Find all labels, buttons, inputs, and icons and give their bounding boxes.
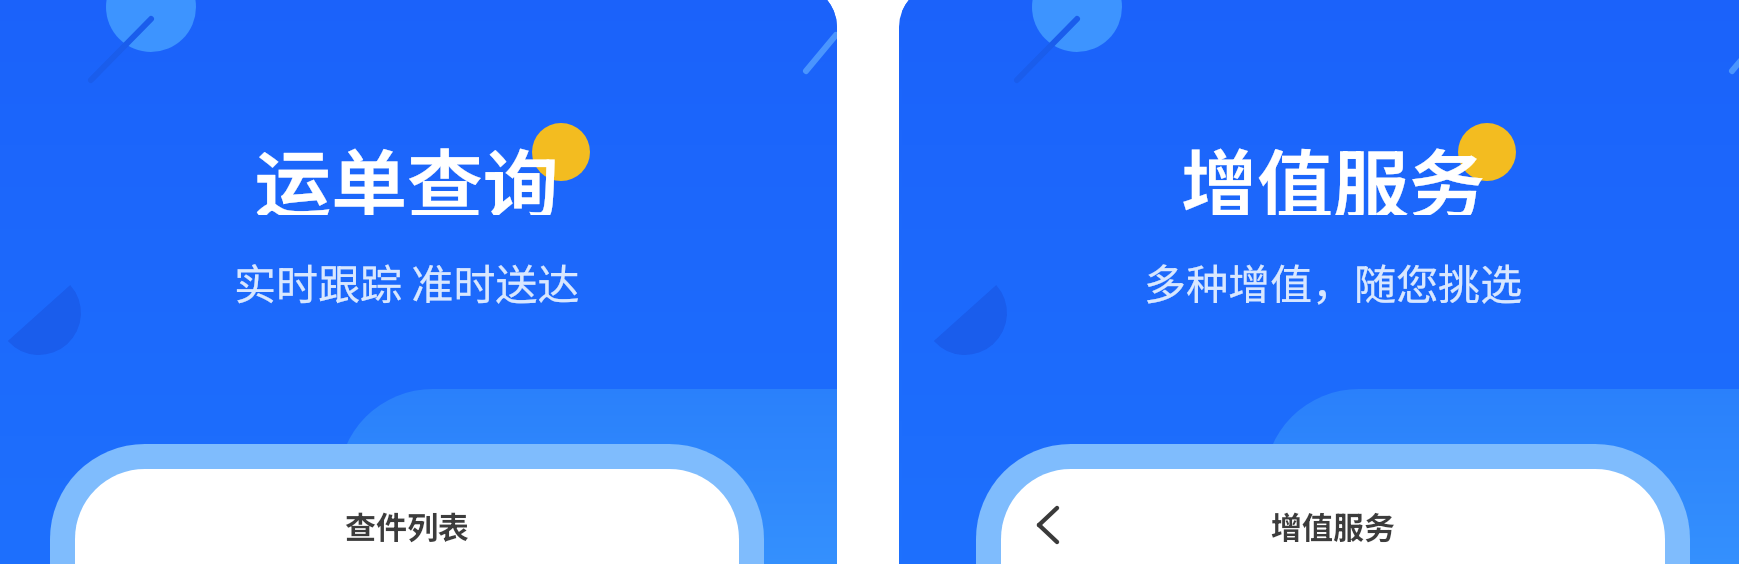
staticText: 多种增值，随您挑选 bbox=[1144, 251, 1523, 312]
button[interactable]: 增值服务 bbox=[1001, 469, 1665, 564]
staticText: 增值服务 bbox=[1271, 503, 1395, 548]
staticText: 增值服务 bbox=[1181, 125, 1485, 215]
button[interactable]: Back bbox=[1020, 497, 1076, 553]
staticText: 运单查询 bbox=[255, 125, 559, 215]
staticText: 实时跟踪 准时送达 bbox=[234, 251, 580, 312]
staticText: 查件列表 bbox=[345, 503, 469, 548]
button[interactable]: 查件列表 bbox=[75, 469, 739, 564]
